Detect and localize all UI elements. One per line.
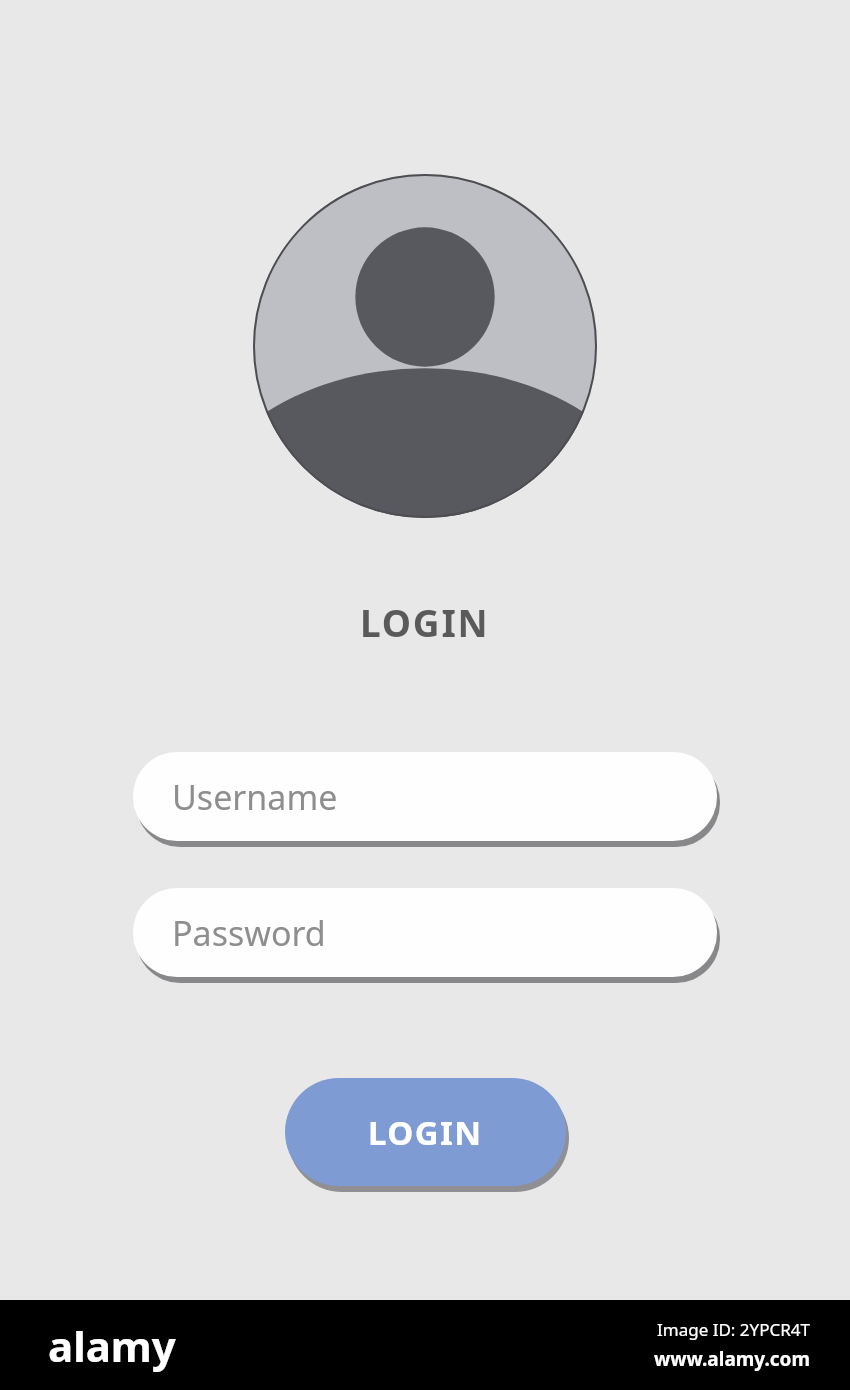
- staticText: LOGIN: [360, 597, 490, 647]
- other: Profile avatar: [253, 174, 597, 518]
- staticText: LOGIN: [368, 1110, 483, 1155]
- staticText: Image ID: 2YPCR4T: [657, 1318, 810, 1341]
- staticText: Password: [172, 910, 326, 956]
- button[interactable]: Username: [133, 752, 717, 841]
- staticText: alamy: [48, 1317, 176, 1374]
- button[interactable]: Password: [133, 888, 717, 977]
- staticText: www.alamy.com: [654, 1346, 810, 1372]
- button[interactable]: LOGIN: [285, 1078, 566, 1186]
- staticText: Username: [172, 774, 338, 820]
